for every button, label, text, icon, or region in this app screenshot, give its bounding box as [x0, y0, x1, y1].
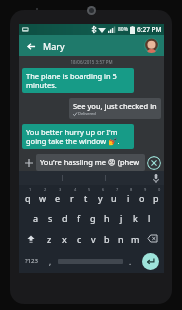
staticText: g: [90, 212, 96, 224]
staticText: y: [98, 192, 103, 204]
staticText: 7: [116, 187, 119, 192]
button[interactable]: b: [100, 228, 114, 249]
staticText: s: [48, 212, 53, 224]
button[interactable]: c: [72, 228, 86, 249]
button[interactable]: z: [42, 228, 57, 249]
staticText: .: [129, 256, 132, 267]
staticText: r: [70, 192, 74, 204]
button[interactable]: s: [43, 207, 58, 228]
staticText: b: [104, 233, 110, 245]
button[interactable]: 6: [93, 186, 107, 207]
button[interactable]: 3: [50, 186, 65, 207]
staticText: 18/06/2015 3:57 PM: [22, 59, 161, 65]
staticText: ?123: [25, 257, 38, 265]
button[interactable]: Backspace: [142, 228, 163, 249]
button[interactable]: Add attachment: [22, 156, 36, 170]
staticText: h: [104, 212, 110, 224]
staticText: 0: [158, 187, 161, 192]
staticText: 1: [29, 187, 32, 192]
button[interactable]: Shift: [20, 228, 42, 249]
staticText: f: [77, 212, 81, 224]
staticText: 80%: [118, 26, 128, 33]
button[interactable]: a: [28, 207, 43, 228]
staticText: m: [131, 233, 140, 245]
button[interactable]: 0: [149, 186, 163, 207]
staticText: u: [111, 192, 117, 204]
button[interactable]: See you, just checked in: [69, 98, 161, 119]
staticText: 3: [59, 187, 62, 192]
staticText: l: [148, 212, 151, 224]
button[interactable]: 9: [135, 186, 149, 207]
staticText: 9: [144, 187, 147, 192]
button[interactable]: Contact photo: [144, 38, 159, 53]
button[interactable]: Voice input: [148, 171, 164, 185]
button[interactable]: h: [100, 207, 114, 228]
button[interactable]: 8: [121, 186, 135, 207]
button[interactable]: x: [57, 228, 72, 249]
button[interactable]: 2: [35, 186, 50, 207]
staticText: ,: [49, 256, 52, 267]
button[interactable]: .: [123, 249, 138, 273]
staticText: k: [133, 212, 138, 224]
staticText: 6:27 PM: [137, 25, 162, 34]
staticText: t: [84, 192, 88, 204]
button[interactable]: 7: [107, 186, 121, 207]
staticText: e: [55, 192, 61, 204]
button[interactable]: Symbols: [20, 249, 43, 273]
staticText: Delivered: [78, 111, 96, 116]
button[interactable]: 5: [79, 186, 93, 207]
staticText: You're hassling me 😡 (phew glad I can st…: [40, 157, 141, 168]
staticText: c: [77, 233, 82, 245]
staticText: v: [91, 233, 96, 245]
staticText: d: [62, 212, 68, 224]
staticText: w: [39, 192, 47, 204]
button[interactable]: f: [72, 207, 86, 228]
button[interactable]: You're hassling me 😡 (phew glad I can st…: [36, 154, 145, 171]
button[interactable]: You better hurry up or I'm going take th…: [22, 124, 134, 149]
staticText: a: [33, 212, 39, 224]
button[interactable]: Cancel sending: [147, 156, 161, 170]
staticText: n: [118, 233, 124, 245]
staticText: 5: [88, 187, 91, 192]
staticText: You better hurry up or I'm going take th…: [26, 127, 130, 146]
button[interactable]: n: [114, 228, 128, 249]
button[interactable]: v: [86, 228, 100, 249]
staticText: Mary: [43, 40, 144, 52]
button[interactable]: 4: [65, 186, 79, 207]
button[interactable]: Back: [24, 39, 38, 53]
staticText: See you, just checked in: [73, 101, 157, 111]
button[interactable]: 1: [20, 186, 35, 207]
staticText: o: [139, 192, 145, 204]
staticText: p: [153, 192, 159, 204]
button[interactable]: Send: [138, 249, 163, 273]
staticText: 8: [130, 187, 133, 192]
button[interactable]: The plane is boarding in 5 minutes.: [22, 68, 134, 93]
button[interactable]: j: [114, 207, 128, 228]
staticText: q: [25, 192, 31, 204]
button[interactable]: ,: [43, 249, 58, 273]
staticText: x: [62, 233, 67, 245]
button[interactable]: m: [128, 228, 142, 249]
staticText: i: [127, 192, 130, 204]
button[interactable]: k: [128, 207, 142, 228]
staticText: 6: [102, 187, 105, 192]
staticText: The plane is boarding in 5 minutes.: [26, 71, 130, 90]
staticText: 4: [74, 187, 77, 192]
button[interactable]: d: [58, 207, 72, 228]
staticText: z: [47, 233, 52, 245]
staticText: 2: [44, 187, 47, 192]
button[interactable]: g: [86, 207, 100, 228]
button[interactable]: l: [142, 207, 156, 228]
staticText: j: [120, 212, 123, 224]
